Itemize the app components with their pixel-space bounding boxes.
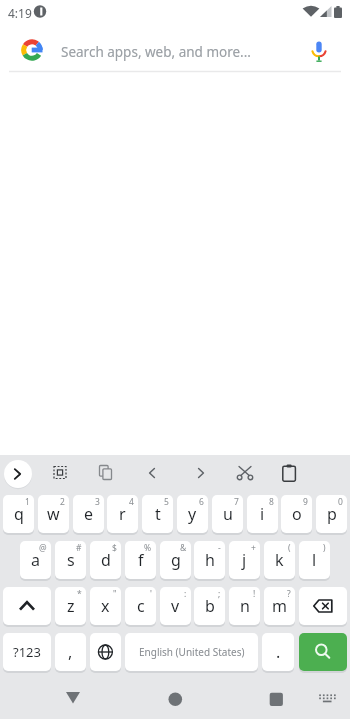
staticText: % xyxy=(144,542,152,554)
staticText: $ xyxy=(112,542,117,554)
button[interactable] xyxy=(299,587,347,627)
staticText: x xyxy=(101,595,110,617)
staticText: m xyxy=(272,595,287,617)
button[interactable]: y xyxy=(177,495,208,535)
button[interactable]: English (United States) xyxy=(125,633,258,673)
staticText: # xyxy=(76,542,82,554)
button[interactable]: n xyxy=(229,587,260,627)
staticText: f xyxy=(138,549,144,571)
button[interactable]: r xyxy=(107,495,138,535)
staticText: 4 xyxy=(129,496,134,508)
button[interactable] xyxy=(229,457,261,489)
button[interactable] xyxy=(185,457,217,489)
button[interactable]: t xyxy=(142,495,173,535)
staticText: 8 xyxy=(269,496,274,508)
button[interactable]: w xyxy=(38,495,69,535)
staticText: 5 xyxy=(164,496,169,508)
staticText: 9 xyxy=(303,496,308,508)
button[interactable] xyxy=(136,457,168,489)
button[interactable] xyxy=(145,680,205,719)
staticText: 6 xyxy=(199,496,204,508)
staticText: 3 xyxy=(95,496,100,508)
staticText: t xyxy=(155,503,161,525)
button[interactable]: e xyxy=(73,495,104,535)
staticText: i xyxy=(260,503,265,525)
staticText: Search apps, web, and more... xyxy=(61,43,251,61)
staticText: ) xyxy=(323,542,326,554)
button[interactable]: x xyxy=(90,587,121,627)
button[interactable] xyxy=(4,460,32,488)
staticText: k xyxy=(275,549,284,571)
staticText: 1 xyxy=(25,496,30,508)
button[interactable]: f xyxy=(125,541,156,581)
staticText: & xyxy=(180,542,187,554)
button[interactable]: k xyxy=(264,541,295,581)
button[interactable]: . xyxy=(262,633,294,673)
staticText: 0 xyxy=(338,496,343,508)
staticText: , xyxy=(68,641,73,663)
button[interactable] xyxy=(300,24,350,72)
staticText: + xyxy=(251,542,256,554)
staticText: ?123 xyxy=(13,643,41,661)
button[interactable]: p xyxy=(316,495,347,535)
staticText: b xyxy=(205,595,215,617)
staticText: w xyxy=(47,503,60,525)
staticText: 2 xyxy=(60,496,65,508)
staticText: n xyxy=(240,595,250,617)
staticText: h xyxy=(205,549,215,571)
staticText: g xyxy=(171,549,181,571)
staticText: 7 xyxy=(234,496,239,508)
button[interactable]: v xyxy=(160,587,191,627)
staticText: z xyxy=(67,595,75,617)
staticText: ? xyxy=(287,588,291,600)
staticText: r xyxy=(119,503,126,525)
staticText: e xyxy=(84,503,94,525)
staticText: p xyxy=(327,503,337,525)
button[interactable]: b xyxy=(194,587,225,627)
button[interactable]: s xyxy=(55,541,86,581)
button[interactable] xyxy=(299,633,347,673)
staticText: English (United States) xyxy=(139,645,245,659)
button[interactable]: l xyxy=(299,541,330,581)
staticText: ; xyxy=(218,588,221,600)
staticText: a xyxy=(31,549,40,571)
button[interactable]: u xyxy=(212,495,243,535)
staticText: u xyxy=(223,503,233,525)
button[interactable]: h xyxy=(194,541,225,581)
staticText: s xyxy=(67,549,75,571)
button[interactable] xyxy=(246,680,306,719)
button[interactable] xyxy=(88,457,120,489)
button[interactable]: , xyxy=(55,633,86,673)
button[interactable]: c xyxy=(125,587,156,627)
staticText: ( xyxy=(288,542,291,554)
button[interactable]: j xyxy=(229,541,260,581)
button[interactable]: m xyxy=(264,587,295,627)
button[interactable] xyxy=(273,457,305,489)
button[interactable]: i xyxy=(247,495,278,535)
staticText: ' xyxy=(150,588,152,600)
button[interactable]: d xyxy=(90,541,121,581)
staticText: d xyxy=(101,549,111,571)
button[interactable] xyxy=(0,24,300,72)
button[interactable]: g xyxy=(160,541,191,581)
staticText: v xyxy=(171,595,180,617)
button[interactable] xyxy=(90,633,121,673)
staticText: 4:19 xyxy=(8,5,32,21)
staticText: c xyxy=(137,595,145,617)
staticText: o xyxy=(292,503,302,525)
staticText: l xyxy=(312,549,317,571)
button[interactable] xyxy=(45,680,105,719)
staticText: j xyxy=(242,549,247,571)
staticText: * xyxy=(77,588,82,600)
button[interactable]: ?123 xyxy=(3,633,51,673)
staticText: : xyxy=(184,588,187,600)
button[interactable] xyxy=(44,457,76,489)
button[interactable]: z xyxy=(55,587,86,627)
staticText: ! xyxy=(253,588,256,600)
button[interactable]: a xyxy=(20,541,51,581)
button[interactable] xyxy=(305,680,347,719)
button[interactable]: q xyxy=(3,495,34,535)
button[interactable] xyxy=(3,587,51,627)
button[interactable]: o xyxy=(281,495,312,535)
staticText: - xyxy=(218,542,221,554)
